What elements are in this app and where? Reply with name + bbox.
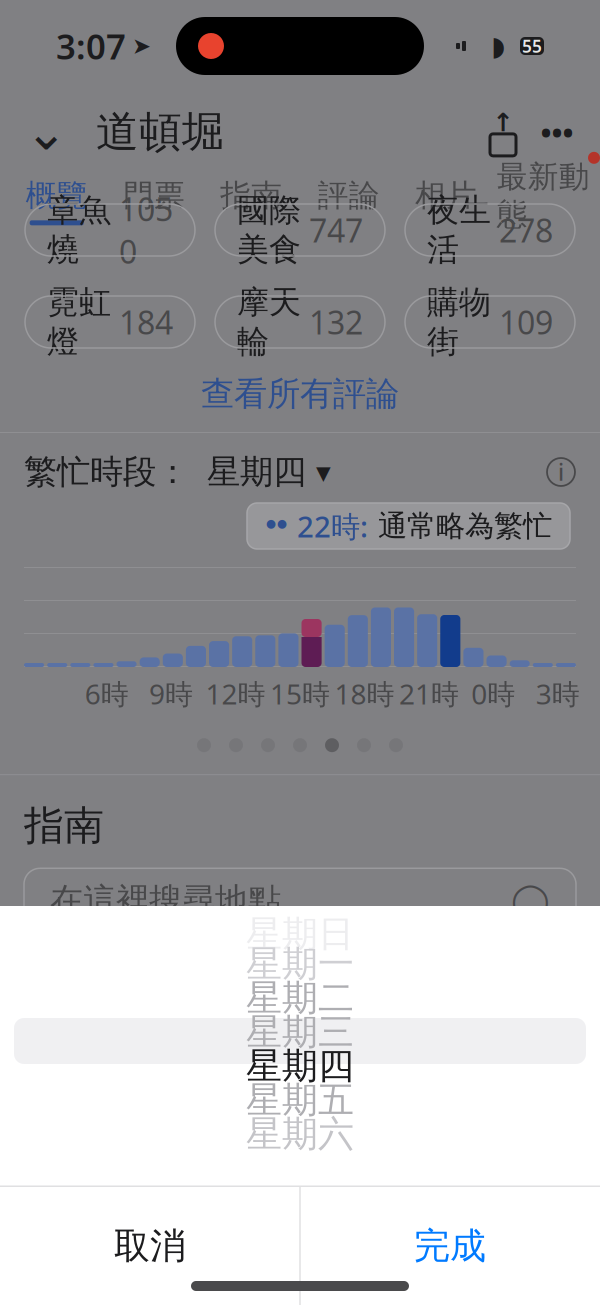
staticText: ꔷꔷ <box>265 515 287 537</box>
staticText: 指南 <box>24 801 104 850</box>
staticText: 747 <box>309 209 363 251</box>
staticText: 完成 <box>414 1224 486 1268</box>
staticText: 夜生活 <box>427 191 491 269</box>
button[interactable]: 星期四 <box>199 450 339 494</box>
button[interactable]: 說明 <box>536 447 586 497</box>
button[interactable]: 星期六 <box>0 1117 600 1151</box>
button[interactable]: 分享 <box>476 104 530 160</box>
staticText: 摩天輪 <box>237 283 301 361</box>
button[interactable]: 國際美食 <box>215 204 385 256</box>
staticText: 查看所有評論 <box>201 373 399 414</box>
staticText: 取消 <box>114 1224 186 1268</box>
staticText: ••• <box>540 112 573 151</box>
staticText: 星期六 <box>246 1112 354 1156</box>
staticText: 星期五 <box>246 1078 354 1122</box>
staticText: 在這裡搜尋地點 <box>50 880 281 921</box>
staticText: 55 <box>522 34 542 57</box>
staticText: 12時 <box>206 675 266 712</box>
staticText: 道頓堀 <box>96 106 225 158</box>
button[interactable]: 星期三 <box>0 1015 600 1049</box>
button[interactable]: 查看所有評論 <box>0 362 600 426</box>
button[interactable]: 霓虹燈 <box>25 296 195 348</box>
staticText: 章魚燒 <box>47 191 111 269</box>
button[interactable]: 最新動態 <box>495 172 592 230</box>
staticText: 9時 <box>149 675 193 712</box>
staticText: 3時 <box>536 675 580 712</box>
button[interactable]: 完成 <box>300 1187 600 1305</box>
button[interactable]: 星期五 <box>0 1083 600 1117</box>
staticText: ◗ <box>491 31 505 61</box>
staticText: ➤ <box>132 33 151 59</box>
staticText: ↑ <box>492 108 513 137</box>
staticText: 星期四 <box>246 1044 354 1088</box>
button[interactable]: 星期一 <box>0 947 600 981</box>
staticText: 1050 <box>119 187 173 272</box>
button[interactable]: 概覽 <box>8 172 105 230</box>
button[interactable]: 評論 <box>300 172 397 230</box>
staticText: i <box>558 457 564 487</box>
staticText: 星期二 <box>246 976 354 1020</box>
staticText: ◯ <box>511 881 550 920</box>
staticText: 星期四 <box>207 451 306 492</box>
staticText: ⌄ <box>25 103 67 161</box>
staticText: 184 <box>119 301 173 343</box>
staticText: 霓虹燈 <box>47 283 111 361</box>
staticText: 購物街 <box>427 283 491 361</box>
staticText: 繁忙時段： <box>24 451 189 492</box>
staticText: 最新動態 <box>497 158 590 233</box>
staticText: 通常略為繁忙 <box>378 508 552 544</box>
staticText: 概覽 <box>26 177 88 214</box>
staticText: 109 <box>499 301 553 343</box>
staticText: 132 <box>309 301 363 343</box>
button[interactable]: 更多 <box>530 104 584 160</box>
button[interactable]: 門票 <box>105 172 203 230</box>
staticText: ▾ <box>316 455 331 489</box>
staticText: 3:07 <box>56 23 126 69</box>
button[interactable]: 購物街 <box>405 296 575 348</box>
button[interactable]: 摩天輪 <box>215 296 385 348</box>
staticText: 22時: <box>297 506 368 545</box>
button[interactable]: 星期二 <box>0 981 600 1015</box>
button[interactable]: 指南 <box>203 172 300 230</box>
staticText: 6時 <box>85 675 129 712</box>
button[interactable]: 章魚燒 <box>25 204 195 256</box>
staticText: 18時 <box>334 675 394 712</box>
staticText: 指南 <box>220 177 282 214</box>
staticText: 星期日 <box>246 912 354 956</box>
button[interactable]: 取消 <box>0 1187 300 1305</box>
staticText: 15時 <box>270 675 330 712</box>
button[interactable]: 星期日 <box>0 921 600 947</box>
button[interactable]: 星期四 <box>0 1049 600 1083</box>
staticText: 278 <box>499 209 553 251</box>
staticText: 星期一 <box>246 942 354 986</box>
staticText: 相片 <box>415 177 477 214</box>
staticText: 星期三 <box>246 1010 354 1054</box>
staticText: 國際美食 <box>237 191 301 269</box>
staticText: 0時 <box>471 675 515 712</box>
staticText: 21時 <box>399 675 459 712</box>
staticText: 門票 <box>123 177 185 214</box>
button[interactable]: 夜生活 <box>405 204 575 256</box>
staticText: 評論 <box>318 177 380 214</box>
button[interactable]: 收合 <box>14 104 78 160</box>
button[interactable]: 相片 <box>397 172 495 230</box>
